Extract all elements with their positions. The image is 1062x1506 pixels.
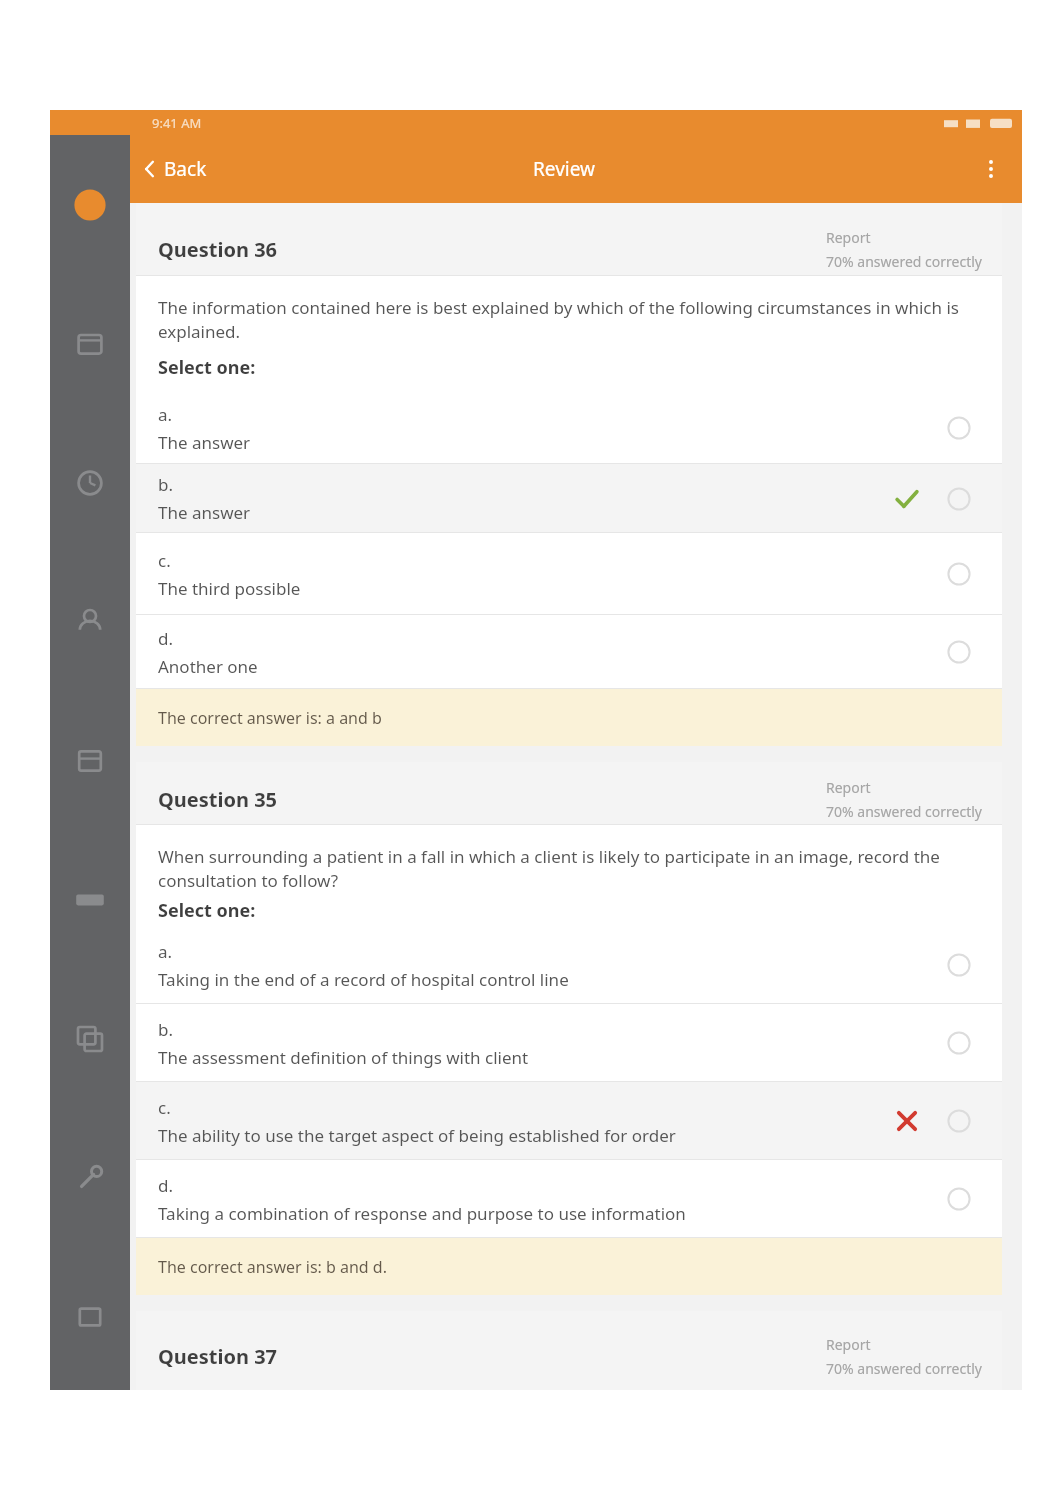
button[interactable]: Select option: [940, 480, 978, 518]
staticText: The assessment definition of things with…: [158, 1046, 529, 1069]
staticText: Select one:: [158, 355, 256, 380]
button[interactable]: Navigation item 5: [50, 691, 130, 830]
staticText: d.: [158, 627, 174, 650]
staticText: The answer: [158, 431, 251, 454]
staticText: Select one:: [158, 898, 256, 923]
staticText: b.: [158, 1018, 174, 1041]
staticText: 9:41 AM: [152, 114, 202, 132]
button[interactable]: Select option: [940, 633, 978, 671]
button[interactable]: a.: [136, 926, 1002, 1004]
staticText: The information contained here is best e…: [158, 296, 959, 343]
button[interactable]: Navigation item 4: [50, 552, 130, 691]
button[interactable]: Correct answer: [888, 480, 926, 518]
staticText: c.: [158, 1096, 171, 1119]
staticText: Question 35: [158, 786, 278, 813]
button[interactable]: Navigation item 7: [50, 969, 130, 1108]
staticText: b.: [158, 473, 174, 496]
staticText: The answer: [158, 501, 251, 524]
staticText: Question 37: [158, 1343, 278, 1370]
staticText: Report: [826, 778, 871, 797]
button[interactable]: Navigation item 1: [50, 135, 130, 274]
button[interactable]: Select option: [940, 555, 978, 593]
button[interactable]: Select option: [940, 409, 978, 447]
staticText: Taking a combination of response and pur…: [158, 1202, 686, 1225]
button[interactable]: Navigation item 9: [50, 1247, 130, 1386]
button[interactable]: b.: [136, 1004, 1002, 1082]
staticText: Back: [164, 156, 207, 182]
button[interactable]: Incorrect answer: [888, 1102, 926, 1140]
button[interactable]: Back: [138, 156, 207, 182]
staticText: 70% answered correctly: [826, 252, 982, 271]
staticText: a.: [158, 403, 173, 426]
button[interactable]: Navigation item 2: [50, 274, 130, 413]
staticText: The third possible: [158, 577, 301, 600]
button[interactable]: More options: [970, 148, 1012, 190]
button[interactable]: d.: [136, 615, 1002, 689]
staticText: The ability to use the target aspect of …: [158, 1124, 676, 1147]
button[interactable]: Select option: [940, 1102, 978, 1140]
button[interactable]: c.: [136, 533, 1002, 615]
staticText: c.: [158, 549, 171, 572]
button[interactable]: b.: [136, 464, 1002, 533]
staticText: The correct answer is: a and b: [158, 707, 382, 729]
staticText: When surrounding a patient in a fall in …: [158, 845, 980, 892]
button[interactable]: Navigation item 8: [50, 1108, 130, 1247]
button[interactable]: Navigation item 6: [50, 830, 130, 969]
staticText: a.: [158, 940, 173, 963]
staticText: 70% answered correctly: [826, 802, 982, 821]
staticText: Report: [826, 1335, 871, 1354]
button[interactable]: Select option: [940, 946, 978, 984]
button[interactable]: Select option: [940, 1180, 978, 1218]
button[interactable]: a.: [136, 392, 1002, 464]
button[interactable]: Select option: [940, 1024, 978, 1062]
staticText: Taking in the end of a record of hospita…: [158, 968, 569, 991]
staticText: Report: [826, 228, 871, 247]
staticText: d.: [158, 1174, 174, 1197]
button[interactable]: c.: [136, 1082, 1002, 1160]
staticText: 70% answered correctly: [826, 1359, 982, 1378]
staticText: Review: [533, 156, 595, 182]
staticText: The correct answer is: b and d.: [158, 1256, 387, 1278]
button[interactable]: Navigation item 3: [50, 413, 130, 552]
button[interactable]: d.: [136, 1160, 1002, 1238]
staticText: Question 36: [158, 236, 278, 263]
staticText: Another one: [158, 655, 258, 678]
